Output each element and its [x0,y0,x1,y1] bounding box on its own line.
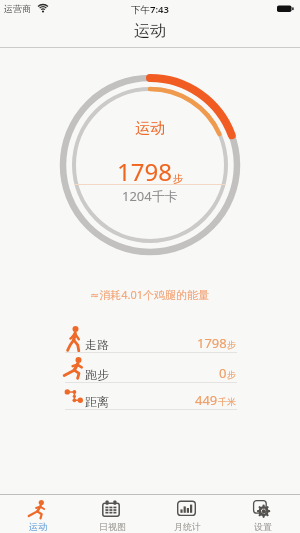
staticText: ≈消耗4.01个鸡腿的能量 [90,287,210,302]
button[interactable]: 设置 [225,495,300,533]
staticText: 步 [227,339,236,350]
staticText: 449 [195,391,218,409]
staticText: 日视图 [99,521,126,532]
staticText: 设置 [254,521,272,532]
button[interactable]: 走路 [63,323,236,353]
staticText: 走路 [85,337,109,352]
staticText: 月统计 [174,521,201,532]
staticText: 运动 [29,521,47,532]
staticText: 千米 [218,396,236,407]
button[interactable]: 日视图 [75,495,150,533]
button[interactable]: 跑步 [63,353,236,383]
staticText: 运营商 [4,3,31,14]
staticText: 距离 [85,394,109,409]
staticText: 0 [219,364,227,382]
staticText: 1798 [117,155,172,188]
button[interactable]: 运动 [0,495,75,533]
staticText: 下午7:43 [131,3,169,16]
button[interactable]: 距离 [63,382,236,410]
staticText: 步 [227,369,236,380]
staticText: 跑步 [85,367,109,382]
staticText: 步 [173,172,183,185]
staticText: 运动 [135,119,165,138]
staticText: 1798 [197,334,227,352]
staticText: 运动 [134,21,166,41]
staticText: 1204千卡 [122,187,178,205]
button[interactable]: 月统计 [150,495,225,533]
